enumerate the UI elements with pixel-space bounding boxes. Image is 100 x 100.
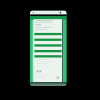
button[interactable]: List item — [34, 55, 62, 58]
button[interactable]: List item — [34, 44, 62, 47]
button[interactable]: Add — [56, 76, 60, 80]
button[interactable]: List item — [34, 50, 62, 53]
button[interactable]: App bar — [30, 16, 66, 20]
button[interactable]: List item — [34, 32, 62, 35]
button[interactable]: List item — [34, 38, 62, 41]
